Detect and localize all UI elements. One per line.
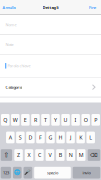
- staticText: E: [24, 116, 27, 123]
- button[interactable]: E: [21, 114, 30, 126]
- staticText: Categoria: [5, 84, 22, 90]
- staticText: S: [19, 134, 22, 141]
- staticText: 🌐: [14, 170, 21, 176]
- staticText: T: [44, 116, 47, 123]
- button[interactable]: H: [56, 132, 65, 143]
- staticText: ⇧: [3, 151, 9, 159]
- button[interactable]: P: [91, 114, 100, 126]
- staticText: U: [64, 116, 68, 123]
- button[interactable]: Y: [51, 114, 60, 126]
- staticText: invio: [82, 170, 90, 175]
- staticText: spazio: [47, 170, 58, 175]
- staticText: L: [89, 134, 92, 141]
- button[interactable]: N: [66, 149, 75, 161]
- button[interactable]: C: [35, 149, 44, 161]
- staticText: Note: [5, 42, 13, 47]
- staticText: Y: [54, 116, 57, 123]
- staticText: X: [27, 151, 30, 159]
- button[interactable]: A: [6, 132, 14, 143]
- button[interactable]: 🎤: [23, 167, 32, 178]
- button[interactable]: R: [31, 114, 40, 126]
- button[interactable]: D: [26, 132, 35, 143]
- button[interactable]: Annulla: [0, 0, 18, 15]
- staticText: Annulla: [3, 5, 16, 10]
- staticText: K: [79, 134, 82, 141]
- button[interactable]: V: [46, 149, 54, 161]
- staticText: W: [13, 116, 18, 123]
- button[interactable]: W: [11, 114, 20, 126]
- button[interactable]: O: [81, 114, 90, 126]
- staticText: Parola chiave: [7, 63, 30, 68]
- button[interactable]: X: [25, 149, 33, 161]
- staticText: O: [84, 116, 88, 123]
- button[interactable]: G: [46, 132, 55, 143]
- staticText: Nome: [5, 22, 16, 27]
- button[interactable]: T: [41, 114, 50, 126]
- staticText: Q: [3, 116, 7, 123]
- staticText: P: [94, 116, 97, 123]
- staticText: A: [9, 134, 12, 141]
- staticText: ⌫: [90, 152, 98, 158]
- staticText: G: [48, 134, 52, 141]
- button[interactable]: J: [66, 132, 75, 143]
- button[interactable]: F: [36, 132, 45, 143]
- staticText: F: [39, 134, 42, 141]
- button[interactable]: ⌫: [88, 149, 100, 161]
- staticText: D: [28, 134, 32, 141]
- button[interactable]: spazio: [34, 167, 71, 178]
- staticText: N: [69, 151, 73, 159]
- staticText: R: [34, 116, 37, 123]
- staticText: C: [38, 151, 41, 159]
- button[interactable]: Z: [14, 149, 23, 161]
- staticText: V: [48, 151, 51, 159]
- button[interactable]: I: [71, 114, 80, 126]
- button[interactable]: Parola chiave: [0, 55, 101, 77]
- staticText: H: [58, 134, 62, 141]
- staticText: Dettagli: [42, 5, 58, 10]
- button[interactable]: 🌐: [13, 167, 22, 178]
- staticText: B: [59, 151, 62, 159]
- staticText: M: [79, 151, 84, 159]
- staticText: Fine: [89, 5, 96, 10]
- button[interactable]: U: [61, 114, 70, 126]
- button[interactable]: 123: [1, 167, 11, 178]
- button[interactable]: S: [16, 132, 25, 143]
- staticText: I: [75, 116, 77, 123]
- button[interactable]: L: [86, 132, 95, 143]
- staticText: 🎤: [24, 170, 31, 176]
- staticText: 123: [3, 170, 9, 175]
- staticText: Z: [17, 151, 20, 159]
- button[interactable]: Q: [1, 114, 9, 126]
- staticText: J: [70, 134, 71, 141]
- button[interactable]: invio: [73, 167, 100, 178]
- button[interactable]: B: [56, 149, 65, 161]
- button[interactable]: Fine: [84, 0, 101, 15]
- button[interactable]: Categoria: [0, 77, 101, 97]
- button[interactable]: M: [77, 149, 85, 161]
- button[interactable]: ⇧: [1, 149, 12, 161]
- button[interactable]: K: [76, 132, 85, 143]
